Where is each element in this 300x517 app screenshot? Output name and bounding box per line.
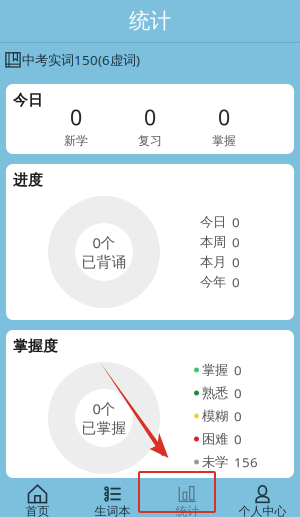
staticText: 156: [234, 453, 258, 471]
staticText: 0: [232, 253, 240, 271]
staticText: 本月: [200, 254, 226, 270]
staticText: 统计: [175, 504, 199, 517]
button[interactable]: 首页: [0, 478, 75, 517]
staticText: 中考实词150(6虚词): [22, 51, 140, 69]
staticText: 0: [144, 103, 156, 131]
staticText: 模糊: [202, 408, 228, 424]
staticText: 生词本: [94, 504, 130, 517]
staticText: 复习: [138, 133, 162, 148]
staticText: 统计: [129, 8, 171, 34]
staticText: 新学: [64, 133, 88, 148]
staticText: 个人中心: [238, 504, 286, 517]
staticText: 0: [234, 384, 242, 402]
staticText: 0: [232, 233, 240, 251]
staticText: 进度: [13, 171, 43, 189]
staticText: 0个: [92, 233, 115, 252]
staticText: 掌握: [202, 362, 228, 378]
button[interactable]: 个人中心: [225, 478, 300, 517]
staticText: 掌握: [212, 133, 236, 148]
button[interactable]: 生词本: [75, 478, 150, 517]
staticText: 今日: [13, 91, 43, 109]
staticText: 0: [70, 103, 82, 131]
staticText: 已掌握: [81, 419, 126, 437]
staticText: 0: [218, 103, 230, 131]
staticText: 本周: [200, 234, 226, 250]
staticText: 今日: [200, 214, 226, 230]
staticText: 0: [232, 273, 240, 291]
staticText: 0: [232, 213, 240, 231]
staticText: 困难: [202, 431, 228, 447]
staticText: 首页: [25, 504, 49, 517]
staticText: 0: [234, 361, 242, 379]
button[interactable]: 统计: [150, 478, 225, 517]
staticText: 掌握度: [13, 337, 58, 355]
staticText: 已背诵: [81, 253, 126, 271]
staticText: 0: [234, 407, 242, 425]
staticText: 今年: [200, 274, 226, 290]
staticText: 0: [234, 430, 242, 448]
button[interactable]: 统计: [0, 0, 300, 42]
staticText: 0个: [92, 399, 115, 418]
staticText: 熟悉: [202, 385, 228, 401]
staticText: 未学: [202, 454, 228, 470]
